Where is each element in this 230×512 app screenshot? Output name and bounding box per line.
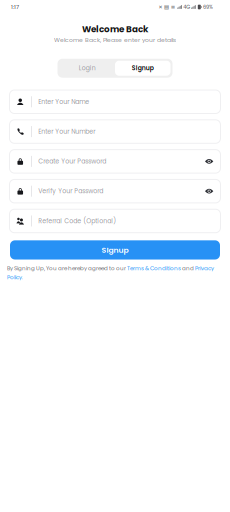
button[interactable]: Enter Your Name <box>9 90 220 113</box>
staticText: and <box>181 264 195 272</box>
staticText: By Signing Up, You are hereby agreed to … <box>7 264 127 272</box>
staticText: Terms & Conditions <box>127 264 181 272</box>
button[interactable]: Privacy <box>195 264 214 272</box>
button[interactable]: Referral Code (Optional) <box>9 209 220 233</box>
staticText: 69% <box>203 3 213 11</box>
staticText: Signup <box>101 244 128 255</box>
staticText: ✕ <box>158 4 162 10</box>
button[interactable]: Login <box>59 61 115 76</box>
button[interactable]: Policy. <box>7 273 23 281</box>
button[interactable]: Terms & Conditions <box>127 264 181 272</box>
staticText: 4G <box>183 3 190 11</box>
staticText: 1:17 <box>11 3 19 11</box>
staticText: ▤ <box>164 4 169 10</box>
staticText: Enter Your Name <box>38 97 89 106</box>
staticText: Signup <box>132 64 154 72</box>
button[interactable]: Verify Your Password <box>9 179 220 203</box>
staticText: Verify Your Password <box>38 187 103 196</box>
button[interactable]: Create Your Password <box>9 150 220 173</box>
button[interactable]: Enter Your Number <box>9 120 220 143</box>
staticText: Welcome Back <box>82 23 148 35</box>
staticText: Welcome Back, Please enter your details <box>54 36 176 44</box>
staticText: Create Your Password <box>38 157 106 166</box>
staticText: Privacy <box>195 264 214 272</box>
staticText: Policy. <box>7 273 23 281</box>
staticText: Referral Code (Optional) <box>38 217 116 225</box>
staticText: Enter Your Number <box>38 127 95 136</box>
staticText: ≡ <box>171 4 175 10</box>
button[interactable]: Signup <box>10 240 220 259</box>
button[interactable]: Signup <box>115 61 170 76</box>
staticText: Login <box>79 64 96 72</box>
